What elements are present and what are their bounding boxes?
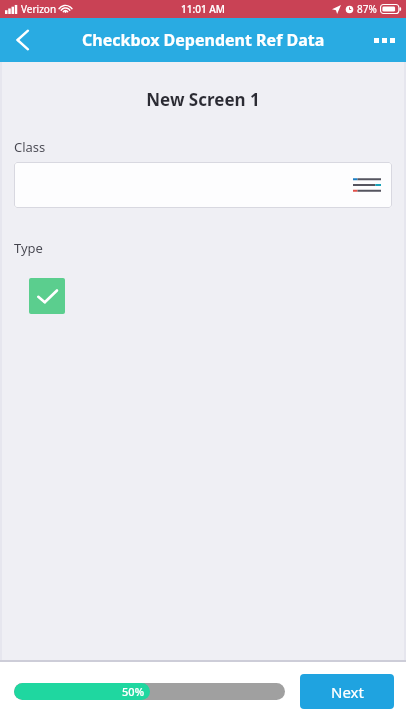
other: Choose from list <box>352 174 382 196</box>
staticText: Next <box>331 682 364 702</box>
staticText: Type <box>14 239 43 257</box>
staticText: New Screen 1 <box>0 88 406 111</box>
staticText: Class <box>14 138 46 156</box>
button[interactable]: Next <box>300 674 394 709</box>
staticText: Checkbox Dependent Ref Data <box>82 29 325 51</box>
staticText: 11:01 AM <box>181 2 225 16</box>
staticText: 87% <box>357 2 377 16</box>
button[interactable]: More options <box>362 18 406 62</box>
button[interactable]: Back <box>0 18 44 62</box>
staticText: 50% <box>14 684 144 699</box>
button[interactable]: Choose from list <box>14 162 392 208</box>
button[interactable]: Type checkbox, checked <box>29 278 65 314</box>
staticText: Verizon <box>21 2 57 16</box>
